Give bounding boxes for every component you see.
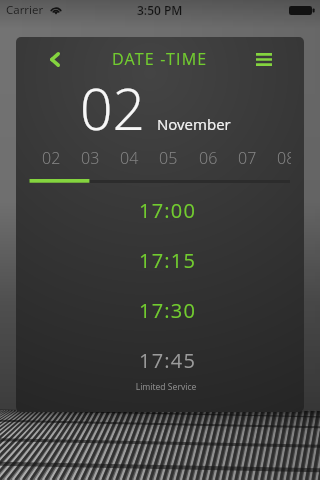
staticText: Limited Service (22, 381, 304, 393)
button[interactable]: 06 (190, 147, 226, 169)
staticText: 17:15 (139, 247, 197, 274)
staticText: 03 (81, 147, 100, 169)
button[interactable]: 02 (33, 147, 69, 169)
staticText: 17:30 (139, 297, 197, 324)
staticText: 05 (159, 147, 178, 169)
button[interactable]: 17:15 (16, 239, 304, 281)
button[interactable]: 17:45 (16, 339, 304, 381)
button[interactable]: 05 (150, 147, 186, 169)
button[interactable]: 08 (268, 147, 291, 169)
staticText: 04 (120, 147, 139, 169)
staticText: 17:00 (139, 197, 197, 224)
staticText: 06 (199, 147, 218, 169)
staticText: Carrier (6, 2, 44, 18)
staticText: 02 (42, 147, 61, 169)
button[interactable]: 17:30 (16, 289, 304, 331)
staticText: DATE -TIME (112, 48, 208, 70)
button[interactable]: Menu (246, 41, 282, 77)
button[interactable]: 17:00 (16, 189, 304, 231)
button[interactable]: 07 (229, 147, 265, 169)
staticText: 3:50 PM (137, 2, 183, 18)
staticText: 07 (238, 147, 257, 169)
staticText: November (157, 114, 231, 134)
staticText: 02 (80, 69, 146, 147)
button[interactable]: 03 (72, 147, 108, 169)
staticText: 17:45 (139, 347, 197, 374)
staticText: 08 (277, 147, 291, 169)
button[interactable]: 04 (111, 147, 147, 169)
button[interactable]: Back (37, 41, 73, 77)
